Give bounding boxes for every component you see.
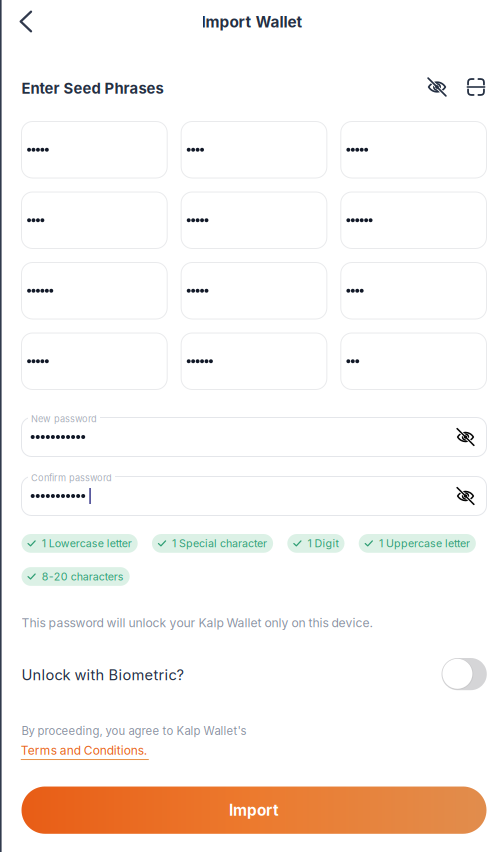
staticText: 1 Digit	[307, 537, 338, 550]
button[interactable]	[181, 121, 327, 178]
staticText: Import	[229, 801, 279, 819]
button[interactable]	[341, 333, 486, 389]
staticText: New password	[31, 413, 97, 424]
button[interactable]: Import	[21, 786, 486, 834]
button[interactable]	[181, 192, 327, 248]
button[interactable]	[21, 333, 167, 389]
staticText: Import Wallet	[201, 13, 302, 31]
staticText: By proceeding, you agree to Kalp Wallet'…	[21, 724, 246, 738]
button[interactable]: Show New password	[445, 417, 485, 456]
staticText: 1 Lowercase letter	[42, 537, 132, 550]
staticText: Confirm password	[31, 472, 112, 483]
button[interactable]	[341, 262, 486, 319]
button[interactable]	[181, 262, 327, 319]
staticText: Terms and Conditions.	[21, 743, 147, 757]
staticText: 1 Special character	[172, 537, 267, 550]
button[interactable]: Terms and Conditions.	[21, 743, 149, 760]
button[interactable]: Back	[6, 3, 46, 39]
staticText: This password will unlock your Kalp Wall…	[21, 615, 372, 630]
button[interactable]	[21, 121, 167, 178]
staticText: Enter Seed Phrases	[21, 79, 163, 97]
staticText: 8-20 characters	[42, 570, 124, 583]
button[interactable]: Unlock with Biometric	[441, 658, 487, 690]
button[interactable]	[181, 333, 327, 389]
button[interactable]: Show seed phrases	[420, 70, 454, 104]
button[interactable]	[341, 192, 486, 248]
button[interactable]	[21, 262, 167, 319]
button[interactable]: Show Confirm password	[445, 476, 485, 515]
button[interactable]: Scan QR code	[459, 70, 493, 104]
staticText: 1 Uppercase letter	[379, 537, 470, 550]
button[interactable]	[341, 121, 486, 178]
staticText: Unlock with Biometric?	[21, 666, 183, 684]
button[interactable]	[21, 192, 167, 248]
